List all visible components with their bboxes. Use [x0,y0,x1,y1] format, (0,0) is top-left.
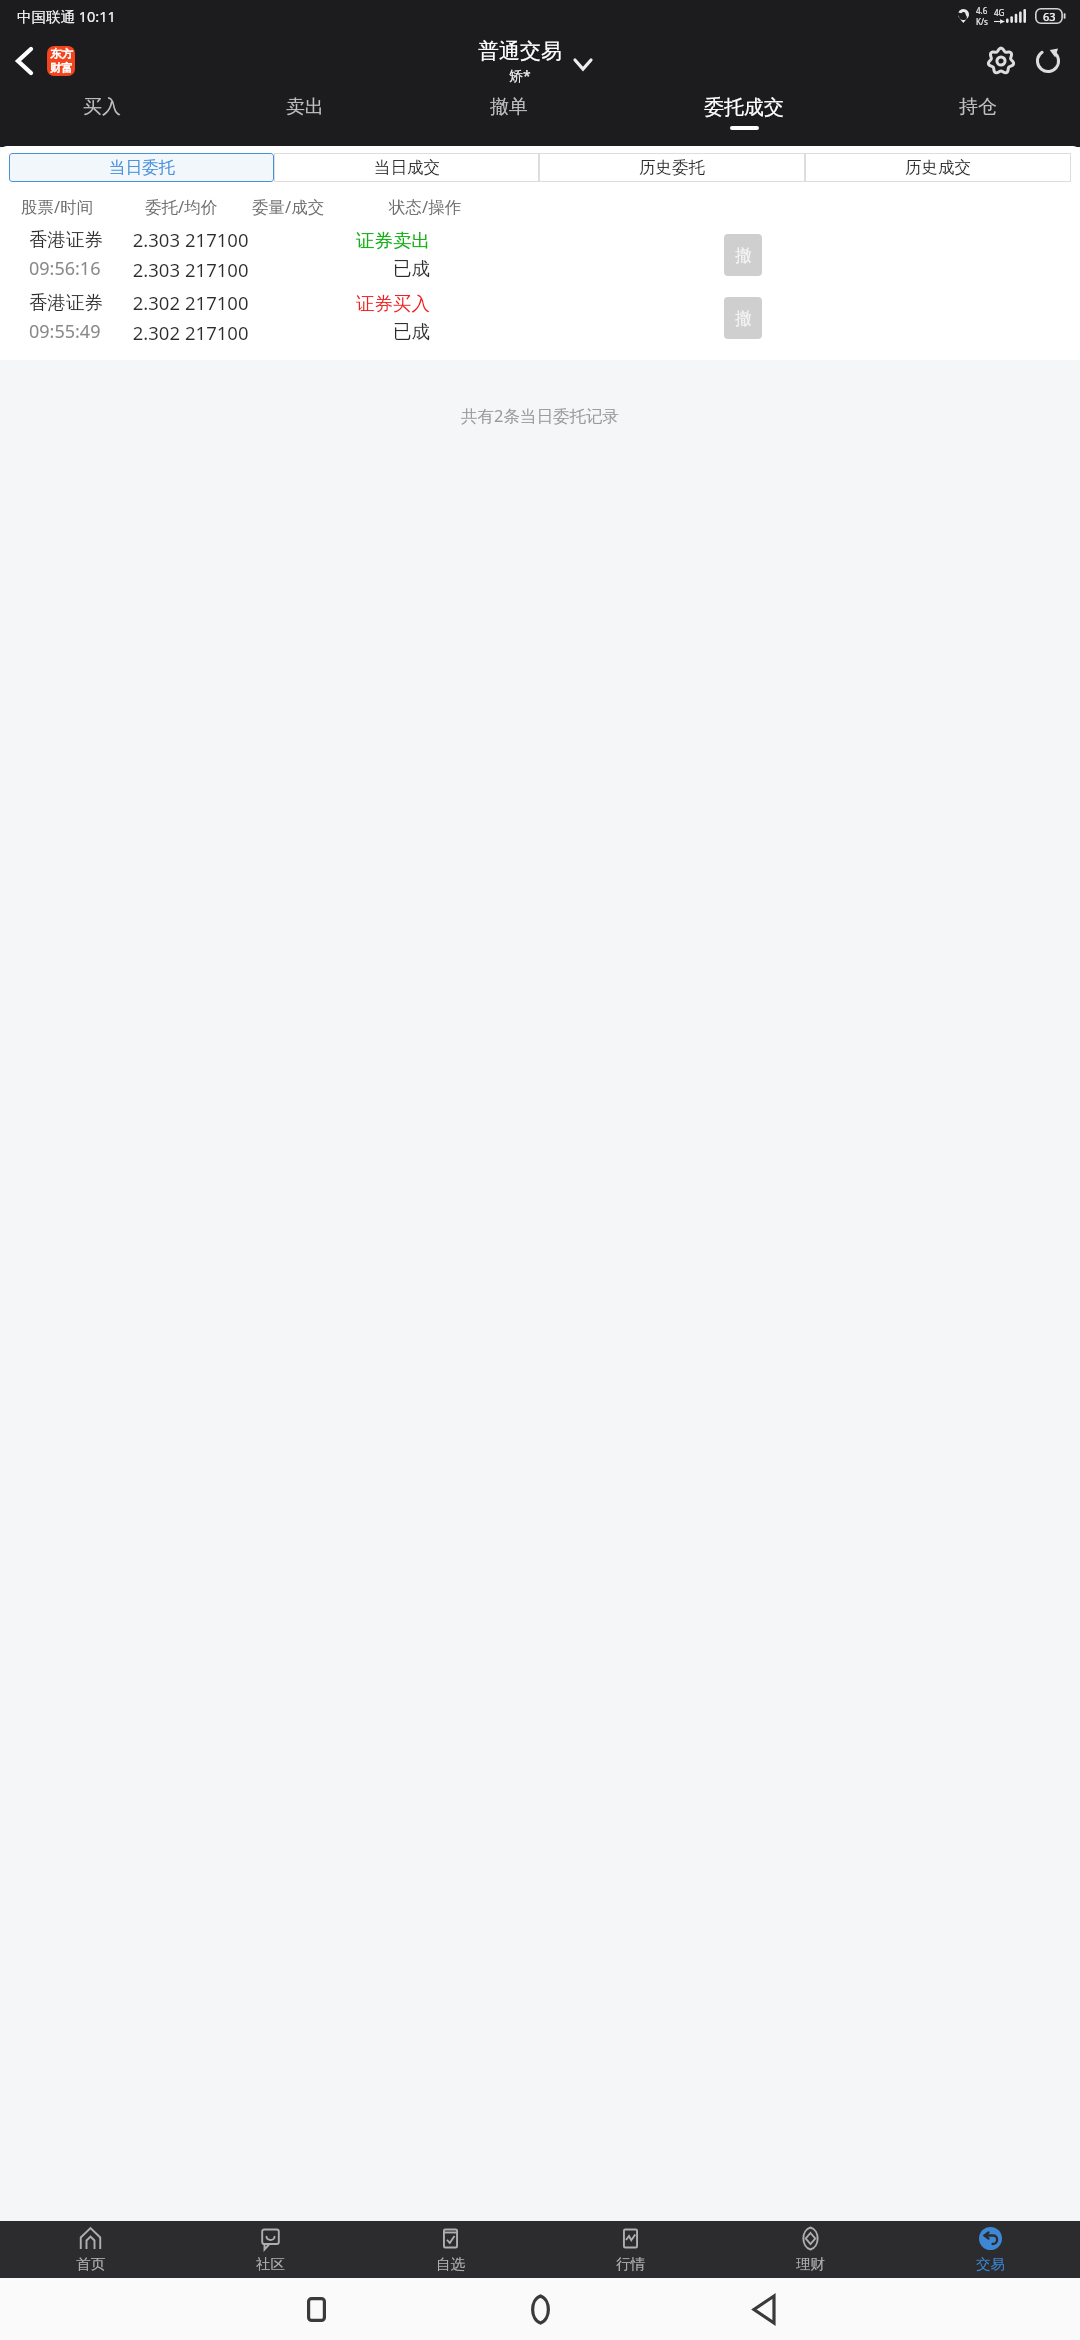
staticText: 社区 [256,2255,285,2273]
staticText: 撤单 [490,95,528,119]
button[interactable]: 交易 [900,2221,1080,2278]
staticText: 香港证券 [29,228,103,251]
button[interactable]: 刷新 [1025,38,1071,84]
staticText: 撤 [735,245,752,266]
staticText: 矫* [509,66,531,85]
button[interactable]: 撤单 [407,91,611,138]
button[interactable]: 最近任务 [204,2278,428,2340]
staticText: 共有2条当日委托记录 [461,404,619,427]
button[interactable]: 卖出 [203,91,407,138]
staticText: 中国联通 10:11 [17,6,116,26]
button[interactable]: 理财 [720,2221,900,2278]
button[interactable]: 委托成交 [611,91,876,138]
staticText: 交易 [976,2255,1005,2273]
staticText: 撤 [735,308,752,329]
staticText: 09:55:49 [29,319,101,344]
staticText: 2.303 [132,227,180,252]
staticText: 63 [1043,9,1056,24]
button[interactable]: 东方财富 [47,46,75,76]
staticText: 09:56:16 [29,256,101,281]
button[interactable]: 当日委托 [9,153,274,182]
staticText: 历史成交 [905,157,971,178]
button[interactable]: 首页 [0,2221,180,2278]
button[interactable]: 撤 [724,234,762,276]
staticText: 4.6 [976,5,988,16]
button[interactable]: 自选 [360,2221,540,2278]
staticText: 首页 [76,2255,105,2273]
staticText: 委托成交 [704,95,784,120]
staticText: 财富 [50,61,73,75]
staticText: 状态/操作 [389,195,462,218]
staticText: 证券买入 [356,292,430,315]
staticText: 理财 [796,2255,825,2273]
staticText: 卖出 [286,95,324,119]
button[interactable]: 香港证券 [0,223,1080,286]
staticText: 当日委托 [109,157,175,178]
staticText: 东方 [50,47,73,61]
staticText: 2.303 [132,257,180,282]
staticText: 217100 [185,320,249,345]
button[interactable]: 社区 [180,2221,360,2278]
button[interactable]: 设置 [978,38,1024,84]
button[interactable]: 返回 [0,37,48,85]
staticText: 买入 [83,95,121,119]
staticText: 自选 [436,2255,465,2273]
staticText: 2.302 [132,320,180,345]
staticText: 委量/成交 [252,195,325,218]
staticText: 历史委托 [639,157,705,178]
staticText: 4G [994,7,1005,18]
button[interactable]: 香港证券 [0,286,1080,349]
staticText: 当日成交 [374,157,440,178]
staticText: 217100 [185,257,249,282]
staticText: 证券卖出 [356,229,430,252]
staticText: 香港证券 [29,291,103,314]
staticText: 持仓 [959,95,997,119]
staticText: 已成 [393,257,430,280]
staticText: 217100 [185,290,249,315]
button[interactable]: 买入 [0,91,203,138]
button[interactable]: 返回 [652,2278,876,2340]
button[interactable]: 主屏幕 [428,2278,652,2340]
button[interactable]: 行情 [540,2221,720,2278]
button[interactable]: 持仓 [876,91,1080,138]
staticText: 2.302 [132,290,180,315]
staticText: 217100 [185,227,249,252]
button[interactable]: 普通交易 [478,38,591,85]
staticText: 行情 [616,2255,645,2273]
button[interactable]: 当日成交 [274,153,539,182]
staticText: 普通交易 [478,38,562,64]
staticText: 已成 [393,320,430,343]
button[interactable]: 撤 [724,297,762,339]
button[interactable]: 历史委托 [539,153,805,182]
button[interactable]: 历史成交 [805,153,1071,182]
staticText: K/s [976,16,988,27]
staticText: 委托/均价 [145,195,218,218]
staticText: 股票/时间 [21,195,94,218]
